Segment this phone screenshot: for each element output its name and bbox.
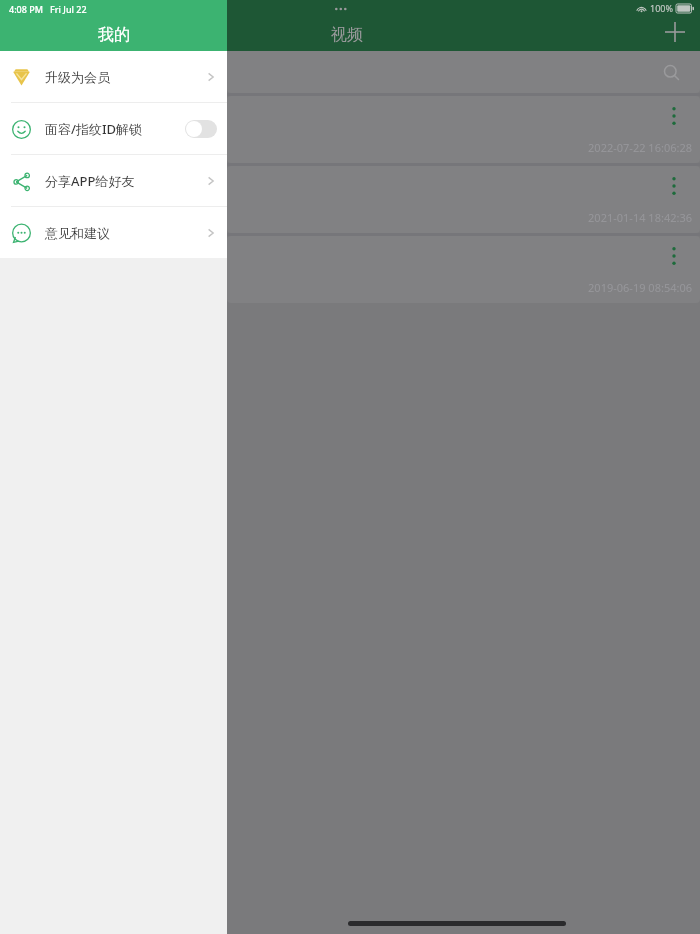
button[interactable]: More options xyxy=(662,174,686,198)
staticText: 面容/指纹ID解锁 xyxy=(45,120,143,138)
button[interactable]: Toggle face or fingerprint unlock xyxy=(185,120,217,138)
staticText: 意见和建议 xyxy=(45,225,110,241)
button[interactable]: 升级为会员 xyxy=(0,51,227,102)
staticText: 2022-07-22 16:06:28 xyxy=(588,140,692,155)
staticText: 视频 xyxy=(331,25,363,45)
button[interactable]: 分享APP给好友 xyxy=(0,155,227,206)
staticText: 我的 xyxy=(98,25,130,45)
button[interactable]: More options xyxy=(662,104,686,128)
button[interactable]: More options xyxy=(662,244,686,268)
button[interactable]: 面容/指纹ID解锁 xyxy=(0,103,227,154)
staticText: 2019-06-19 08:54:06 xyxy=(588,280,692,295)
button[interactable]: Add xyxy=(658,15,692,49)
staticText: 升级为会员 xyxy=(45,69,110,85)
staticText: 分享APP给好友 xyxy=(45,172,135,190)
button[interactable]: 意见和建议 xyxy=(0,207,227,258)
staticText: 4:08 PM Fri Jul 22 xyxy=(9,3,87,15)
staticText: 2021-01-14 18:42:36 xyxy=(588,210,692,225)
staticText: 100% xyxy=(650,2,673,14)
